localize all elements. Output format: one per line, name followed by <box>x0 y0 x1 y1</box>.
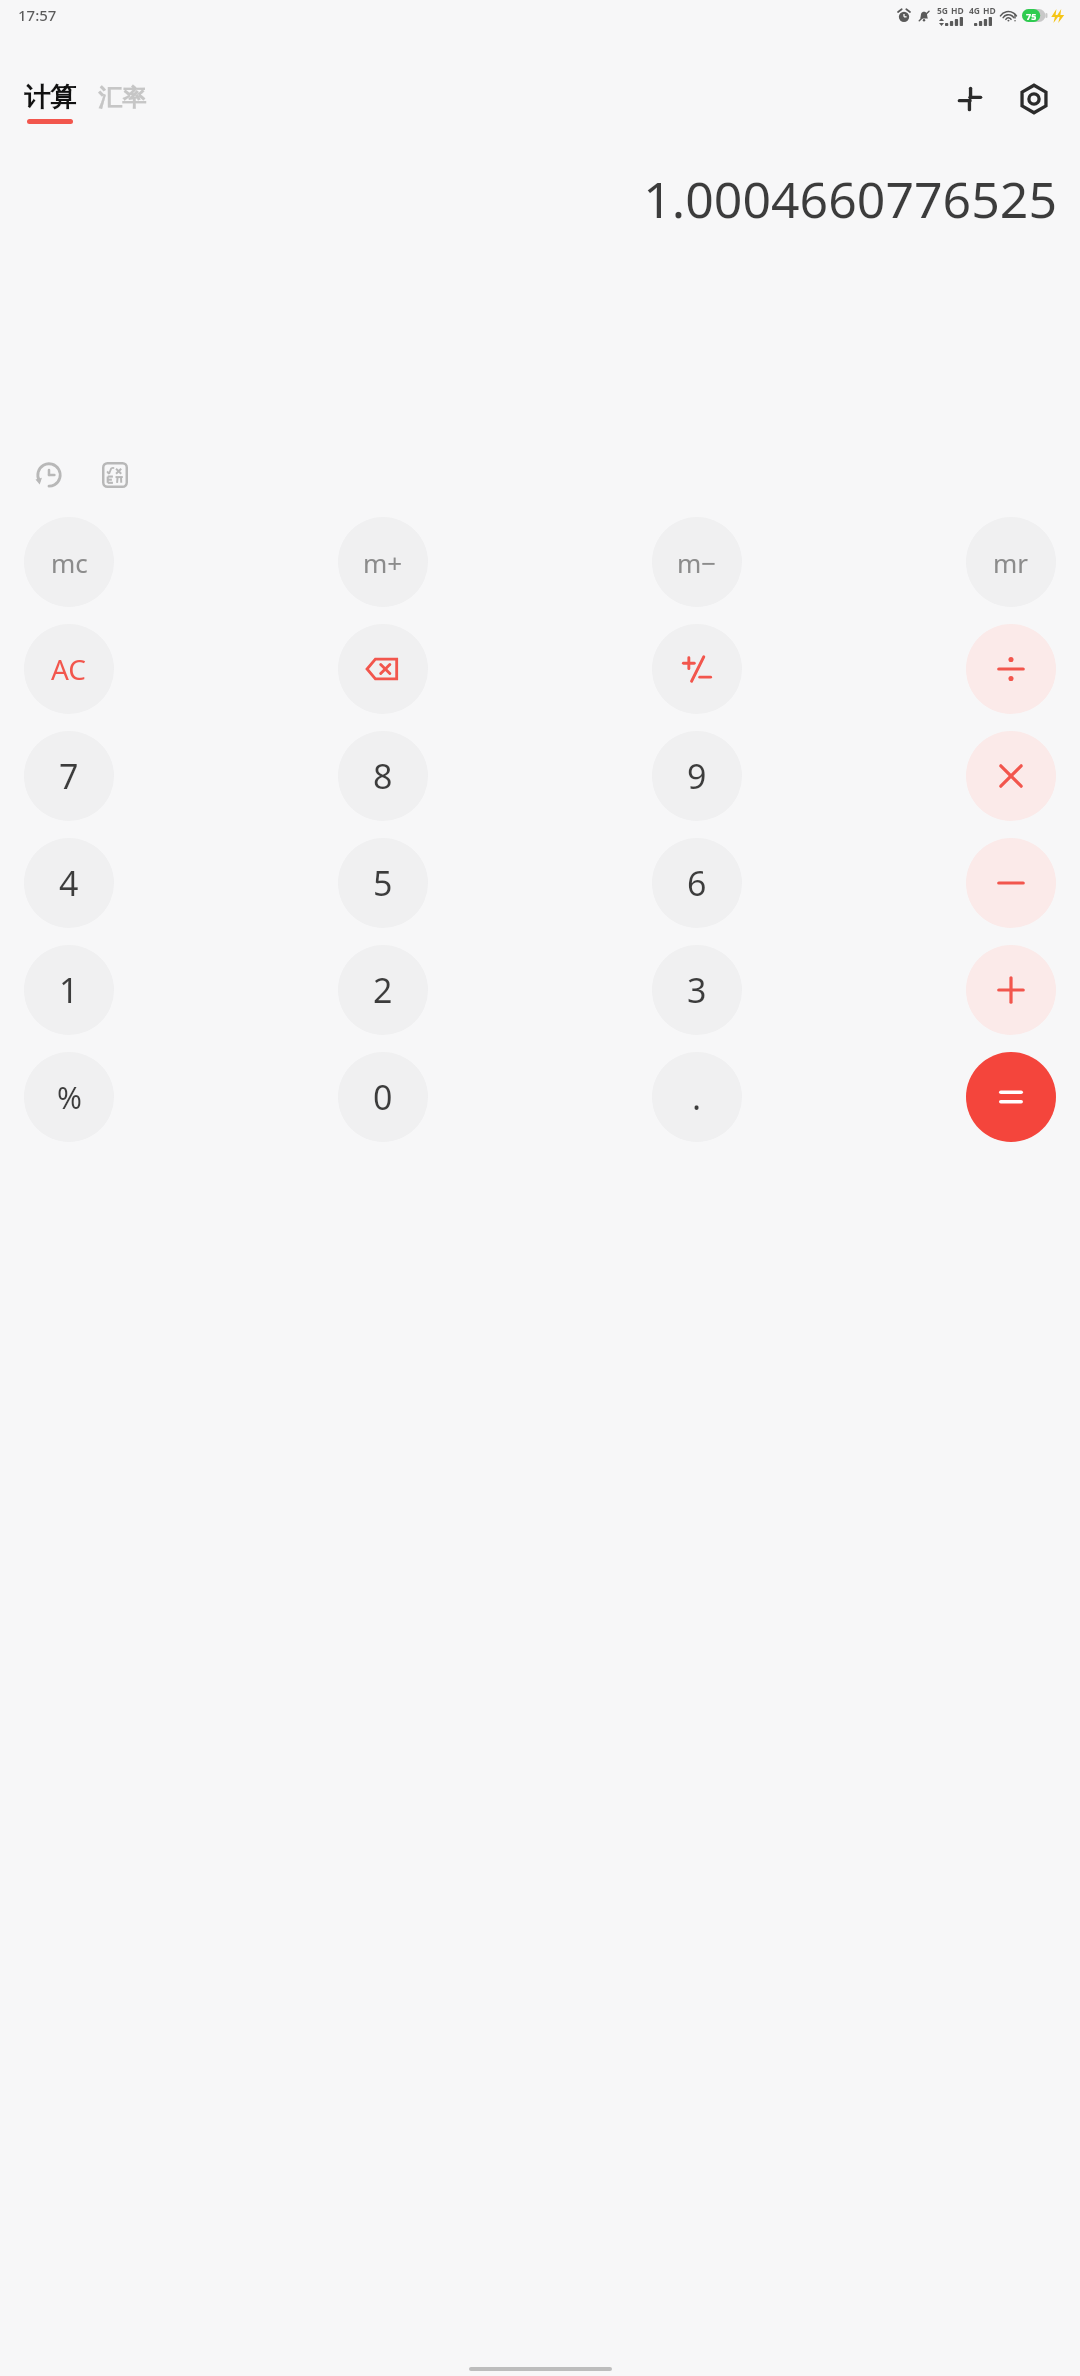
button[interactable]: mc <box>24 517 114 607</box>
staticText: 9 <box>687 753 707 799</box>
button[interactable]: 9 <box>652 731 742 821</box>
staticText: 计算 <box>24 81 76 114</box>
staticText: AC <box>51 650 87 688</box>
staticText: 2 <box>373 967 393 1013</box>
button[interactable]: 计算 <box>24 81 76 124</box>
button[interactable]: Collapse <box>948 77 992 121</box>
button[interactable]: % <box>24 1052 114 1142</box>
staticText: 7 <box>59 753 79 799</box>
button[interactable]: . <box>652 1052 742 1142</box>
staticText: 1 <box>59 967 79 1013</box>
staticText: 汇率 <box>98 83 146 113</box>
button[interactable]: History <box>26 452 72 498</box>
staticText: 8 <box>373 753 393 799</box>
button[interactable]: 5 <box>338 838 428 928</box>
button[interactable]: 4 <box>24 838 114 928</box>
staticText: 0 <box>373 1074 393 1120</box>
staticText: HD <box>983 5 996 17</box>
button[interactable]: 0 <box>338 1052 428 1142</box>
staticText: HD <box>951 5 964 17</box>
staticText: % <box>57 1077 82 1118</box>
button[interactable]: 6 <box>652 838 742 928</box>
button[interactable]: Divide <box>966 624 1056 714</box>
staticText: . <box>692 1074 702 1120</box>
button[interactable]: 8 <box>338 731 428 821</box>
button[interactable]: 7 <box>24 731 114 821</box>
button[interactable]: 1 <box>24 945 114 1035</box>
staticText: 1.0004660776525 <box>643 165 1057 233</box>
button[interactable]: 2 <box>338 945 428 1035</box>
button[interactable]: Plus <box>966 945 1056 1035</box>
staticText: 4 <box>59 860 79 906</box>
button[interactable]: Minus <box>966 838 1056 928</box>
button[interactable]: Backspace <box>338 624 428 714</box>
button[interactable]: mr <box>966 517 1056 607</box>
button[interactable]: m+ <box>338 517 428 607</box>
staticText: mc <box>51 545 88 580</box>
staticText: 3 <box>687 967 707 1013</box>
button[interactable]: Settings <box>1012 77 1056 121</box>
staticText: 5 <box>373 860 393 906</box>
button[interactable]: AC <box>24 624 114 714</box>
staticText: m+ <box>363 545 403 580</box>
staticText: 4G <box>969 5 981 17</box>
staticText: m− <box>677 545 717 580</box>
staticText: 75 <box>1026 10 1037 22</box>
staticText: 6 <box>687 860 707 906</box>
button[interactable]: 3 <box>652 945 742 1035</box>
staticText: 5G <box>937 5 949 17</box>
button[interactable]: Scientific <box>92 452 138 498</box>
button[interactable]: Plus minus <box>652 624 742 714</box>
button[interactable]: Multiply <box>966 731 1056 821</box>
button[interactable]: 汇率 <box>98 83 146 123</box>
staticText: mr <box>993 545 1029 580</box>
button[interactable]: Equals <box>966 1052 1056 1142</box>
button[interactable]: m− <box>652 517 742 607</box>
staticText: 17:57 <box>18 5 57 25</box>
